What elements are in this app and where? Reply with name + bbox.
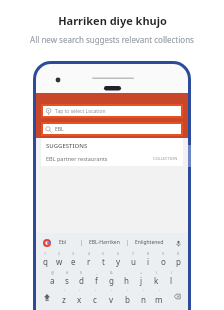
staticText: 4 (88, 251, 91, 256)
staticText: ( (156, 270, 158, 275)
staticText: COLLECTION (153, 156, 178, 161)
button[interactable]: 6 (111, 249, 126, 268)
button[interactable]: ' (151, 287, 167, 306)
button[interactable]: ' (56, 287, 71, 306)
staticText: $ (80, 270, 83, 275)
staticText: j (140, 275, 143, 286)
staticText: s (65, 275, 69, 286)
staticText: 1 (44, 251, 47, 256)
button[interactable]: # (59, 268, 74, 287)
staticText: z (62, 294, 66, 305)
button[interactable]: ' (71, 287, 87, 306)
staticText: Harriken diye khujo (58, 13, 167, 28)
staticText: ' (159, 289, 160, 294)
staticText: + (140, 270, 143, 275)
staticText: u (131, 256, 136, 267)
staticText: x (77, 294, 82, 305)
staticText: ' (143, 289, 144, 294)
staticText: q (43, 256, 48, 267)
button[interactable]: _ (89, 268, 104, 287)
button[interactable]: + (134, 268, 149, 287)
staticText: v (109, 294, 114, 305)
staticText: ' (95, 289, 96, 294)
staticText: l (170, 275, 173, 286)
staticText: n (141, 294, 146, 305)
staticText: # (66, 270, 69, 275)
staticText: y (116, 256, 121, 267)
button[interactable]: Shift (38, 287, 56, 306)
staticText: ) (171, 270, 173, 275)
staticText: f (95, 275, 98, 286)
staticText: a (50, 275, 55, 286)
button[interactable]: 9 (156, 249, 171, 268)
staticText: _ (96, 270, 98, 275)
button[interactable]: 8 (141, 249, 156, 268)
staticText: c (93, 294, 97, 305)
button[interactable]: ' (103, 287, 119, 306)
button[interactable]: Backspace (167, 287, 186, 306)
staticText: h (124, 275, 129, 286)
staticText: t (102, 256, 105, 267)
button[interactable]: Tap to select Location (41, 104, 183, 118)
button[interactable]: @ (45, 268, 59, 287)
button[interactable]: ' (135, 287, 151, 306)
staticText: Tap to select Location (55, 108, 106, 115)
staticText: All new search suggests relevant collect… (30, 34, 194, 45)
staticText: Enlightened (135, 239, 164, 246)
staticText: ' (64, 289, 65, 294)
button[interactable]: ' (119, 287, 135, 306)
button[interactable]: ' (87, 287, 103, 306)
staticText: k (154, 275, 159, 286)
staticText: i (147, 256, 150, 267)
staticText: g (109, 275, 114, 286)
button[interactable]: 0 (171, 249, 186, 268)
staticText: EBL (55, 126, 64, 133)
button[interactable]: 7 (126, 249, 141, 268)
staticText: EBL-Harriken (89, 239, 120, 246)
button[interactable]: 1 (38, 249, 52, 268)
button[interactable]: $ (74, 268, 89, 287)
staticText: 3 (72, 251, 75, 256)
staticText: o (161, 256, 166, 267)
staticText: - (126, 270, 128, 275)
button[interactable]: ) (164, 268, 179, 287)
staticText: EBL partner restaurants (46, 155, 108, 162)
staticText: SUGGESTIONS (46, 142, 88, 150)
staticText: w (56, 256, 63, 267)
staticText: b (125, 294, 130, 305)
staticText: @ (51, 270, 55, 275)
button[interactable]: - (119, 268, 134, 287)
staticText: ' (111, 289, 112, 294)
staticText: 8 (147, 251, 150, 256)
button[interactable]: ( (149, 268, 164, 287)
staticText: m (155, 294, 163, 305)
button[interactable]: 2 (52, 249, 66, 268)
staticText: r (87, 256, 91, 267)
staticText: & (110, 270, 113, 275)
button[interactable]: 5 (96, 249, 111, 268)
button[interactable]: EBL (41, 122, 183, 136)
staticText: 5 (102, 251, 105, 256)
staticText: ' (127, 289, 128, 294)
staticText: 0 (177, 251, 180, 256)
staticText: ' (79, 289, 80, 294)
button[interactable]: Voice input (174, 239, 182, 247)
staticText: 7 (132, 251, 135, 256)
button[interactable]: 4 (81, 249, 96, 268)
staticText: Ebl (59, 239, 67, 246)
staticText: d (79, 275, 84, 286)
button[interactable]: & (104, 268, 119, 287)
staticText: 6 (117, 251, 120, 256)
staticText: p (176, 256, 181, 267)
staticText: e (71, 256, 76, 267)
button[interactable]: Google (42, 238, 51, 247)
button[interactable]: EBL partner restaurants (41, 155, 183, 166)
button[interactable]: 3 (66, 249, 81, 268)
staticText: 9 (162, 251, 165, 256)
staticText: 2 (58, 251, 61, 256)
